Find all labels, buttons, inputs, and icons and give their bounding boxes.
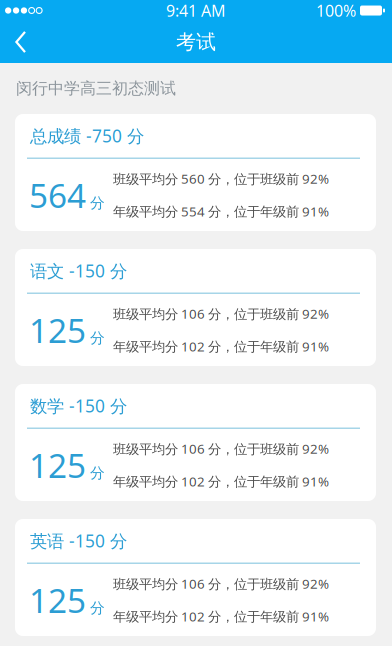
staticText: 年级平均分 102 分，位于年级前 91% bbox=[113, 472, 329, 490]
staticText: 分 bbox=[90, 329, 105, 347]
staticText: 闵行中学高三初态测试 bbox=[16, 79, 176, 98]
button[interactable]: Back bbox=[0, 21, 38, 63]
staticText: 班级平均分 106 分，位于班级前 92% bbox=[113, 305, 329, 322]
staticText: 英语 -150 分 bbox=[30, 529, 127, 552]
staticText: 考试 bbox=[176, 30, 216, 54]
staticText: 分 bbox=[90, 194, 105, 212]
staticText: 年级平均分 102 分，位于年级前 91% bbox=[113, 607, 329, 625]
staticText: 班级平均分 106 分，位于班级前 92% bbox=[113, 575, 329, 592]
staticText: 125 bbox=[29, 443, 86, 487]
button[interactable]: 英语 -150 分 bbox=[15, 519, 376, 636]
button[interactable]: 语文 -150 分 bbox=[15, 249, 376, 366]
staticText: 年级平均分 554 分，位于年级前 91% bbox=[113, 202, 329, 220]
staticText: 100% bbox=[316, 0, 356, 21]
button[interactable]: 总成绩 -750 分 bbox=[15, 114, 376, 231]
staticText: 班级平均分 106 分，位于班级前 92% bbox=[113, 440, 329, 457]
staticText: 班级平均分 560 分，位于班级前 92% bbox=[113, 170, 329, 187]
staticText: 数学 -150 分 bbox=[30, 394, 127, 417]
staticText: 125 bbox=[29, 578, 86, 622]
button[interactable]: 数学 -150 分 bbox=[15, 384, 376, 501]
staticText: 9:41 AM bbox=[166, 0, 226, 21]
staticText: 总成绩 -750 分 bbox=[30, 124, 144, 147]
staticText: 125 bbox=[29, 308, 86, 352]
staticText: 年级平均分 102 分，位于年级前 91% bbox=[113, 337, 329, 355]
staticText: 564 bbox=[29, 173, 86, 217]
staticText: 分 bbox=[90, 464, 105, 482]
staticText: 分 bbox=[90, 599, 105, 617]
staticText: 语文 -150 分 bbox=[30, 259, 127, 282]
